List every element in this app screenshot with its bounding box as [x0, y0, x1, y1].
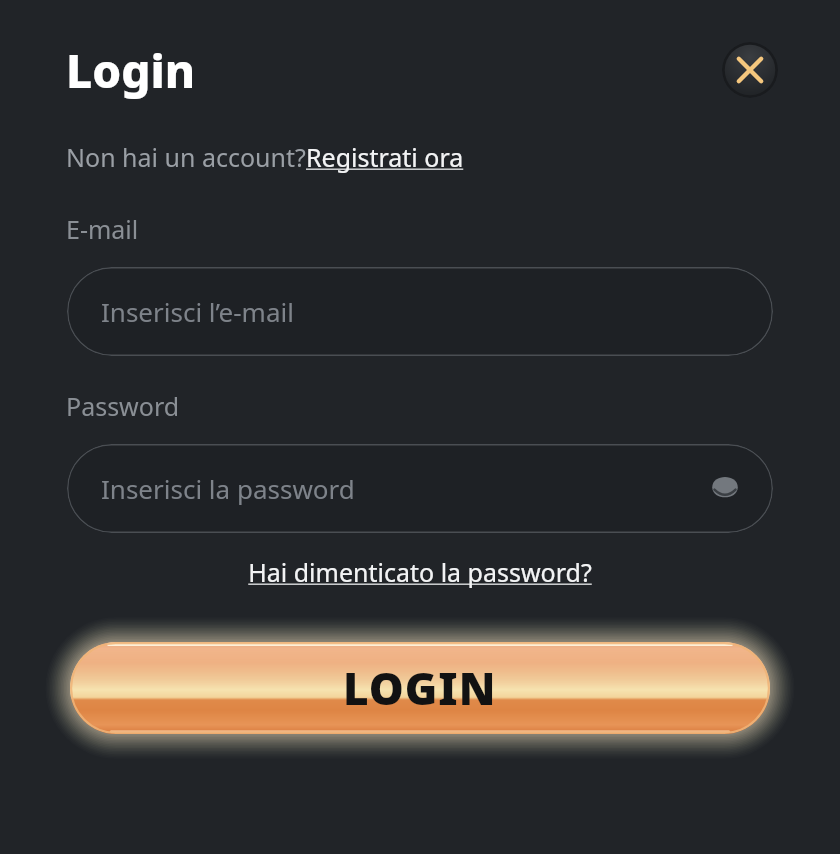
staticText: Login: [66, 39, 196, 102]
button[interactable]: Registrati ora: [306, 140, 464, 174]
button[interactable]: LOGIN: [70, 642, 770, 734]
staticText: LOGIN: [343, 658, 497, 718]
staticText: Password: [66, 389, 180, 423]
button[interactable]: Close: [722, 42, 778, 98]
staticText: Non hai un account?: [66, 140, 306, 174]
staticText: E-mail: [66, 212, 139, 246]
staticText: Inserisci la password: [101, 471, 355, 506]
staticText: Inserisci l’e-mail: [101, 294, 294, 329]
button[interactable]: Inserisci la password: [67, 444, 773, 533]
button[interactable]: Show password: [703, 467, 747, 511]
button[interactable]: Inserisci l’e-mail: [67, 267, 773, 356]
staticText: Hai dimenticato la password?: [248, 555, 592, 589]
staticText: Registrati ora: [306, 140, 464, 174]
button[interactable]: Hai dimenticato la password?: [248, 555, 592, 589]
